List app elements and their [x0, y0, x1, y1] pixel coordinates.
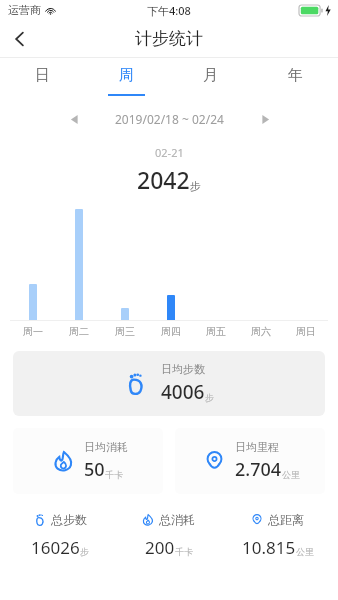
staticText: 公里	[296, 546, 314, 557]
button[interactable]: 日	[0, 58, 84, 103]
staticText: 千卡	[175, 546, 193, 557]
staticText: 2019/02/18 ~ 02/24	[115, 111, 224, 127]
staticText: 周六	[251, 325, 271, 338]
button[interactable]: Next week	[250, 104, 280, 134]
staticText: 步	[205, 392, 214, 403]
staticText: 年	[288, 66, 303, 85]
button[interactable]: Previous week	[59, 104, 89, 134]
staticText: 公里	[282, 469, 300, 480]
staticText: 周五	[206, 325, 226, 338]
staticText: 周一	[23, 325, 43, 338]
staticText: 日均里程	[235, 440, 279, 454]
staticText: 日	[35, 66, 50, 85]
staticText: 4006	[161, 379, 205, 405]
staticText: 千卡	[105, 469, 123, 480]
staticText: 50	[84, 457, 105, 482]
button[interactable]: 日均里程	[175, 428, 325, 494]
staticText: 周三	[115, 325, 135, 338]
button[interactable]: 总步数	[6, 512, 114, 559]
staticText: 周日	[296, 325, 316, 338]
button[interactable]: 总距离	[223, 512, 332, 559]
button[interactable]: Back	[0, 20, 40, 57]
staticText: 日均步数	[161, 362, 205, 376]
staticText: 日均消耗	[84, 440, 128, 454]
staticText: 2.704	[235, 457, 282, 482]
button[interactable]: 日均消耗	[13, 428, 163, 494]
staticText: 周二	[69, 325, 89, 338]
button[interactable]: 月	[168, 58, 253, 103]
button[interactable]: 年	[253, 58, 338, 103]
staticText: 16026	[31, 536, 80, 559]
staticText: 步	[190, 179, 201, 193]
staticText: 步	[80, 546, 89, 557]
staticText: 02-21	[155, 145, 184, 160]
staticText: 2042	[137, 164, 190, 195]
staticText: 总步数	[51, 512, 87, 527]
staticText: 周	[119, 66, 134, 85]
staticText: 计步统计	[135, 28, 203, 49]
staticText: 10.815	[242, 536, 296, 559]
staticText: 周四	[161, 325, 181, 338]
staticText: 总消耗	[159, 512, 195, 527]
staticText: 200	[145, 536, 175, 559]
staticText: 月	[203, 66, 218, 85]
staticText: 总距离	[268, 512, 304, 527]
button[interactable]: 周	[84, 58, 168, 103]
button[interactable]: 总消耗	[114, 512, 223, 559]
button[interactable]: 日均步数	[13, 351, 325, 416]
staticText: 下午4:08	[147, 3, 191, 18]
staticText: 运营商	[8, 3, 41, 17]
